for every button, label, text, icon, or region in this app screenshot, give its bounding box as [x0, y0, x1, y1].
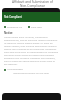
- staticText: Reference No: [7, 25, 23, 28]
- button[interactable]: Reference No: [3, 24, 24, 29]
- staticText: Notice: [4, 31, 13, 35]
- staticText: Affidavit and Submission of Non-Complian…: [12, 0, 53, 8]
- staticText: Signed electronically on this date: [4, 72, 58, 75]
- button[interactable]: Date filed: [27, 24, 43, 29]
- staticText: Date filed: [31, 25, 42, 28]
- staticText: Not Compliant: [4, 15, 22, 19]
- staticText: Lorem ipsum dolor sit amet, consectetur …: [4, 36, 58, 66]
- staticText: Acknowledged: [7, 68, 23, 71]
